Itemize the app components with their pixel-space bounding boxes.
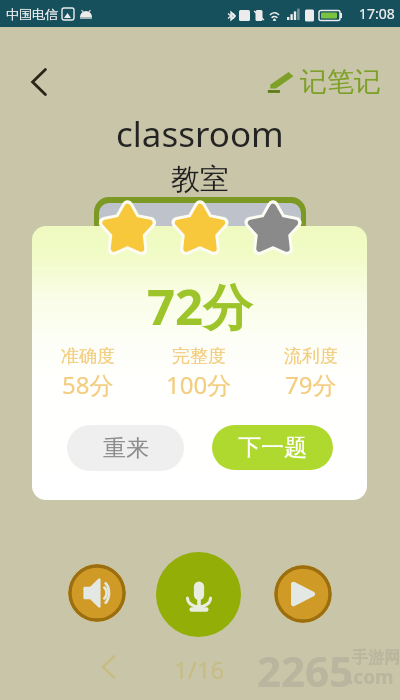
staticText: 2265 [257, 642, 354, 699]
staticText: 下一题 [238, 433, 307, 462]
button[interactable]: 下一题 [212, 425, 333, 470]
staticText: 100分 [166, 368, 232, 401]
button[interactable]: Record [156, 552, 241, 637]
staticText: 58分 [62, 368, 114, 401]
staticText: 完整度 [172, 345, 226, 368]
button[interactable]: 记笔记 [267, 65, 381, 99]
staticText: 中国电信 [6, 6, 58, 22]
staticText: classroom [116, 110, 284, 158]
staticText: 重来 [103, 434, 149, 463]
button[interactable]: Play [274, 565, 332, 623]
staticText: 79分 [285, 368, 337, 401]
staticText: 流利度 [284, 345, 338, 368]
staticText: 教室 [171, 161, 229, 198]
staticText: .com [348, 664, 394, 690]
staticText: 1/16 [174, 653, 225, 686]
staticText: 72分 [147, 273, 253, 340]
button[interactable]: 重来 [67, 425, 184, 471]
button[interactable]: Play audio [68, 564, 126, 622]
button[interactable]: Back [18, 61, 60, 103]
staticText: 17:08 [359, 4, 395, 23]
button[interactable]: Previous [92, 651, 124, 683]
staticText: 手游网 [352, 648, 400, 668]
staticText: 准确度 [61, 345, 115, 368]
staticText: 记笔记 [300, 65, 381, 99]
